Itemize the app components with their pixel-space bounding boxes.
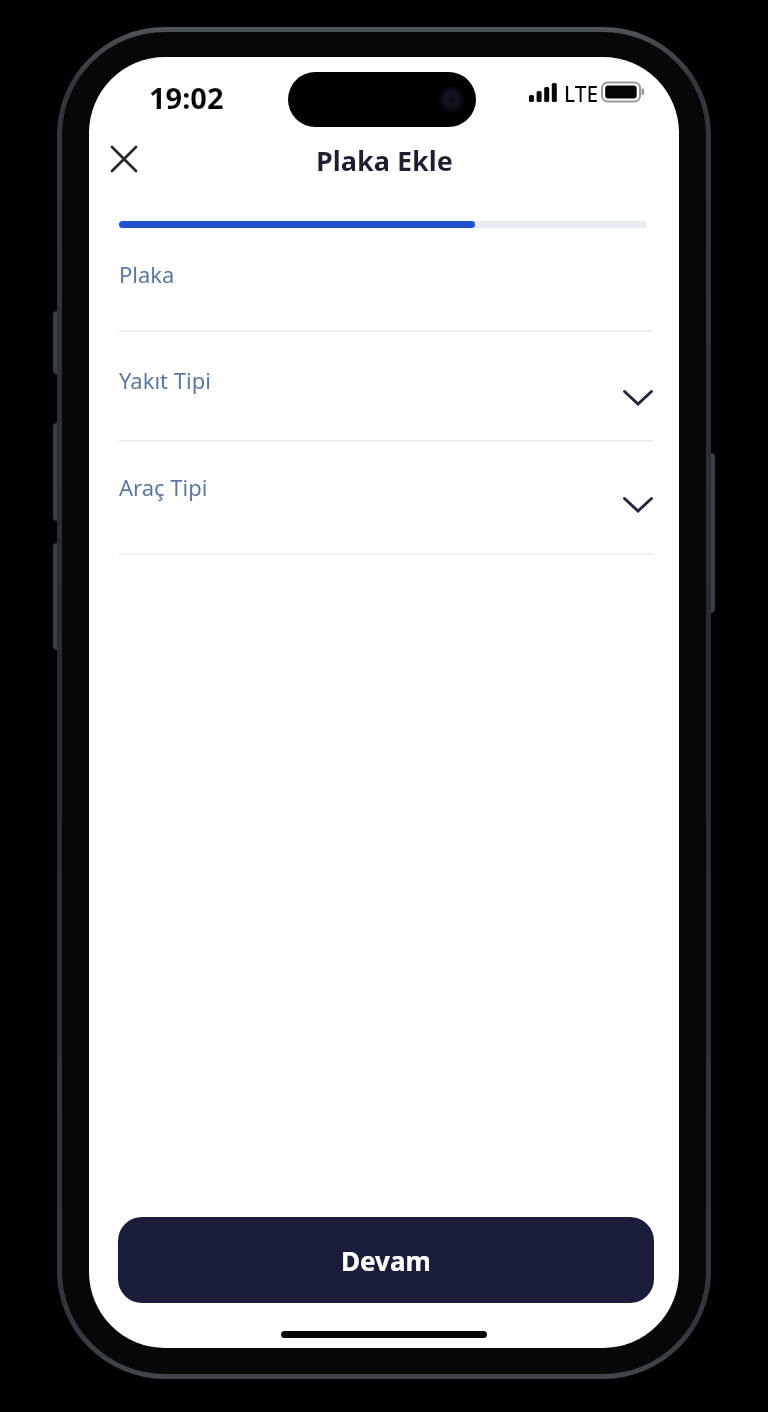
button[interactable]: Plaka	[89, 243, 679, 330]
staticText: Devam	[341, 1243, 431, 1278]
button[interactable]: Yakıt Tipi	[89, 331, 679, 440]
staticText: Yakıt Tipi	[119, 365, 211, 395]
staticText: Plaka	[119, 259, 175, 289]
button[interactable]	[105, 140, 143, 178]
button[interactable]: Devam	[118, 1217, 654, 1303]
staticText: Araç Tipi	[119, 472, 208, 502]
staticText: 19:02	[149, 78, 224, 117]
staticText: Plaka Ekle	[316, 142, 453, 176]
button[interactable]: Araç Tipi	[89, 441, 679, 553]
staticText: LTE	[564, 80, 599, 109]
